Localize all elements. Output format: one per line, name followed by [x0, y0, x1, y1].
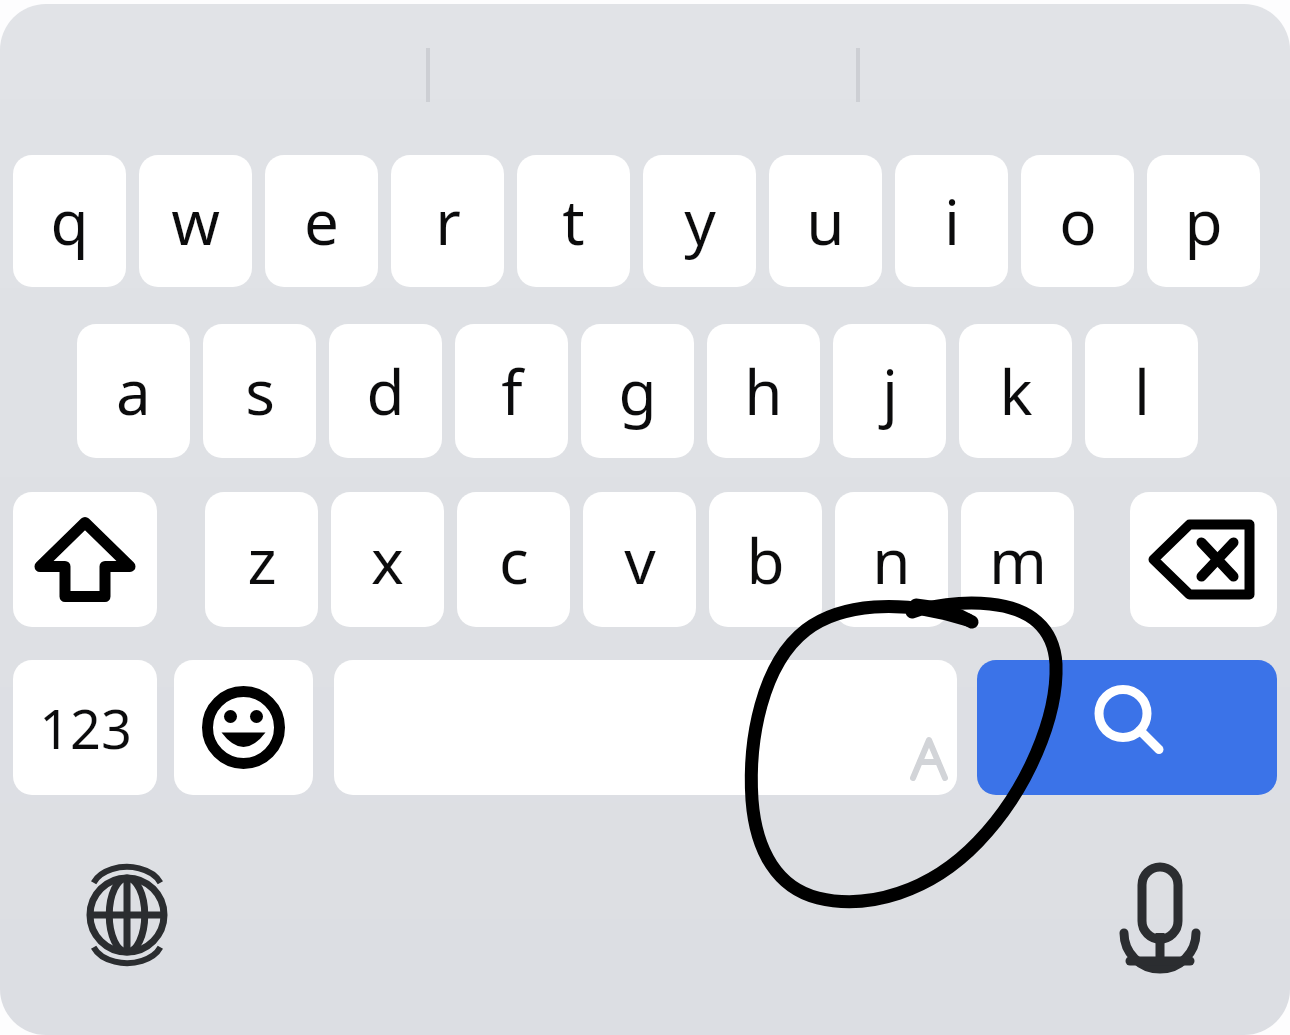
staticText: h	[744, 349, 783, 433]
button[interactable]: h	[707, 324, 820, 458]
button[interactable]: o	[1021, 155, 1134, 287]
staticText: p	[1184, 179, 1223, 263]
button[interactable]: Search	[977, 660, 1277, 795]
button[interactable]: a	[77, 324, 190, 458]
button[interactable]: y	[643, 155, 756, 287]
button[interactable]: c	[457, 492, 570, 627]
staticText: c	[499, 518, 529, 602]
staticText: a	[116, 349, 151, 433]
staticText: w	[171, 179, 220, 263]
button[interactable]: x	[331, 492, 444, 627]
button[interactable]: t	[517, 155, 630, 287]
staticText: y	[684, 179, 716, 263]
staticText: d	[366, 349, 405, 433]
staticText: l	[1134, 349, 1150, 433]
button[interactable]: Emoji	[174, 660, 313, 795]
button[interactable]: Shift	[13, 492, 157, 627]
button[interactable]: m	[961, 492, 1074, 627]
button[interactable]: Backspace	[1130, 492, 1277, 627]
button[interactable]: Voice input	[1093, 848, 1227, 982]
button[interactable]: z	[205, 492, 318, 627]
button[interactable]: w	[139, 155, 252, 287]
button[interactable]: l	[1085, 324, 1198, 458]
staticText: t	[562, 179, 585, 263]
staticText: q	[50, 179, 89, 263]
staticText: f	[501, 349, 523, 433]
staticText: e	[304, 179, 339, 263]
staticText: j	[882, 349, 898, 433]
staticText: x	[371, 518, 404, 602]
button[interactable]: r	[391, 155, 504, 287]
button[interactable]: k	[959, 324, 1072, 458]
button[interactable]: e	[265, 155, 378, 287]
button[interactable]: q	[13, 155, 126, 287]
button[interactable]: 123	[13, 660, 157, 795]
staticText: m	[989, 518, 1047, 602]
button[interactable]: n	[835, 492, 948, 627]
staticText: u	[806, 179, 845, 263]
button[interactable]: Change language	[60, 848, 194, 982]
staticText: g	[618, 349, 657, 433]
button[interactable]: u	[769, 155, 882, 287]
button[interactable]: j	[833, 324, 946, 458]
button[interactable]: p	[1147, 155, 1260, 287]
button[interactable]: s	[203, 324, 316, 458]
button[interactable]: v	[583, 492, 696, 627]
button[interactable]: g	[581, 324, 694, 458]
staticText: v	[624, 518, 656, 602]
staticText: b	[746, 518, 785, 602]
staticText: z	[247, 518, 277, 602]
button[interactable]: f	[455, 324, 568, 458]
button[interactable]: b	[709, 492, 822, 627]
staticText: 123	[39, 691, 132, 765]
staticText: n	[872, 518, 911, 602]
button[interactable]	[334, 660, 957, 795]
staticText: o	[1059, 179, 1097, 263]
staticText: k	[999, 349, 1033, 433]
staticText: i	[944, 179, 960, 263]
staticText: s	[245, 349, 275, 433]
button[interactable]: i	[895, 155, 1008, 287]
staticText: r	[435, 179, 461, 263]
button[interactable]: d	[329, 324, 442, 458]
